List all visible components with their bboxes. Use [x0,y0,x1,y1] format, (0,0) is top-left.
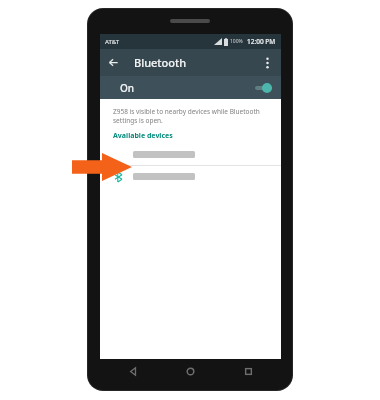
button[interactable]: Back [120,358,146,384]
button[interactable] [100,166,281,187]
staticText: AT&T [105,38,120,46]
button[interactable]: On [100,76,281,99]
staticText: Bluetooth [134,55,187,70]
button[interactable]: Recent apps [235,358,261,384]
button[interactable]: Home [177,358,203,384]
staticText: Available devices [113,131,173,141]
button[interactable]: Navigate up [100,49,127,76]
button[interactable]: More options [254,49,281,76]
staticText: On [120,81,135,95]
button[interactable] [100,144,281,165]
staticText: 100% [230,38,243,45]
staticText: Z958 is visible to nearby devices while … [113,107,268,125]
staticText: 12:00 PM [247,37,276,46]
